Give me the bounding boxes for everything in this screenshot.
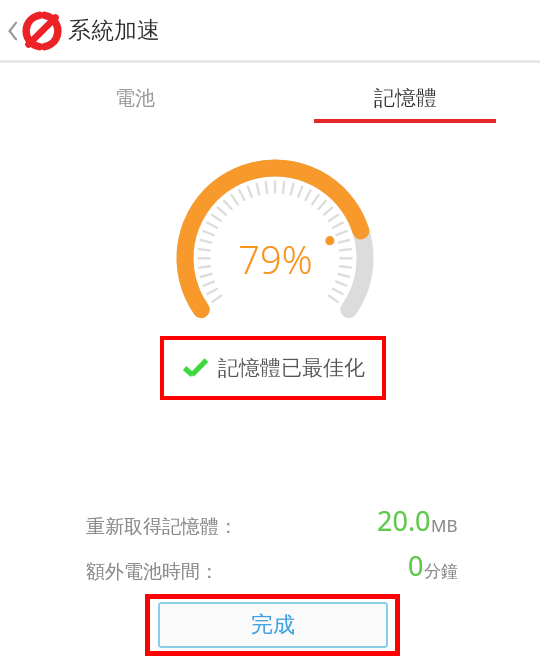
staticText: 記憶體 — [374, 85, 437, 111]
button[interactable]: 記憶體 — [270, 76, 540, 130]
staticText: MB — [431, 514, 458, 537]
staticText: 額外電池時間： — [86, 560, 219, 584]
staticText: 分鐘 — [424, 561, 458, 582]
staticText: 20.0 — [377, 502, 431, 539]
staticText: 記憶體已最佳化 — [218, 355, 365, 381]
staticText: 完成 — [251, 611, 295, 639]
staticText: 0 — [408, 547, 424, 584]
button[interactable]: 記憶體已最佳化 — [160, 336, 386, 400]
button[interactable]: 電池 — [0, 76, 270, 130]
staticText: 系統加速 — [68, 16, 160, 45]
button[interactable]: 完成 — [158, 602, 388, 648]
staticText: 電池 — [115, 86, 155, 111]
button[interactable]: Back — [2, 11, 24, 51]
staticText: 79% — [238, 233, 313, 285]
staticText: 重新取得記憶體： — [86, 515, 238, 539]
